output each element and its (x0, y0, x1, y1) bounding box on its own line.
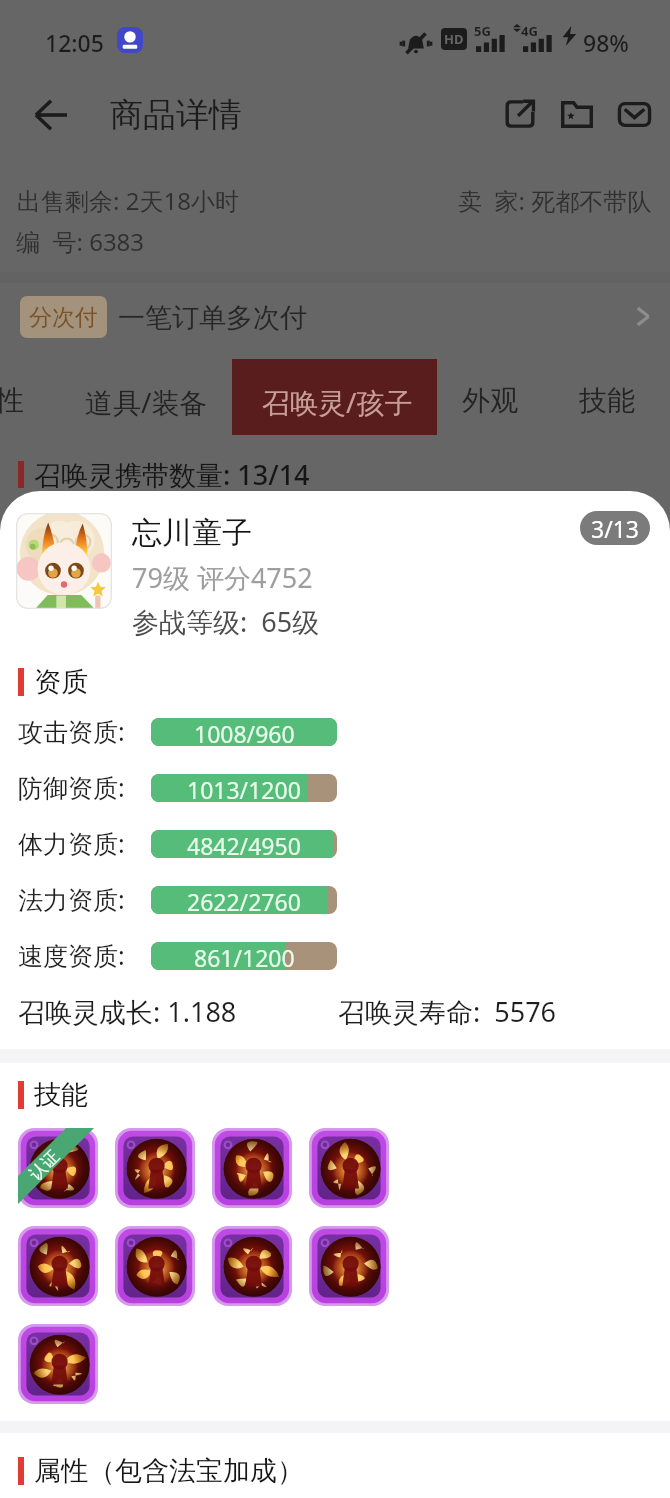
staticText: 12:05 (45, 27, 104, 58)
staticText: 79级 评分4752 (132, 559, 313, 596)
staticText: 4842/4950 (187, 830, 301, 858)
staticText: 属性（包含法宝加成） (34, 1454, 304, 1488)
staticText: 召唤灵/孩子 (262, 383, 413, 421)
staticText: 技能 (34, 1078, 88, 1112)
button[interactable]: Skill 4 (309, 1128, 389, 1208)
button[interactable]: 分次付 (0, 282, 670, 354)
staticText: 4G (521, 22, 538, 40)
button[interactable]: 道具/装备 (85, 383, 208, 421)
button[interactable]: Skill 5 (18, 1226, 98, 1306)
button[interactable]: Skill 8 (309, 1226, 389, 1306)
staticText: 认证 (25, 1146, 64, 1185)
button[interactable]: Favorites (551, 88, 603, 140)
staticText: 861/1200 (194, 942, 295, 970)
staticText: 98% (583, 27, 629, 58)
staticText: 防御资质: (18, 770, 125, 804)
staticText: 召唤灵成长: 1.188 (18, 993, 237, 1030)
button[interactable]: 性 (0, 383, 24, 418)
staticText: 5G (474, 22, 491, 40)
button[interactable]: Skill 1 (18, 1128, 98, 1208)
staticText: 1013/1200 (187, 774, 301, 802)
button[interactable]: Skill 7 (212, 1226, 292, 1306)
staticText: 忘川童子 (132, 514, 252, 552)
staticText: 商品详情 (110, 94, 242, 136)
staticText: 法力资质: (18, 882, 125, 916)
staticText: 编 号: 6383 (16, 225, 145, 258)
staticText: 2622/2760 (187, 886, 301, 914)
button[interactable]: 3/13 (580, 511, 650, 545)
staticText: 召唤灵携带数量: 13/14 (34, 456, 310, 493)
button[interactable]: Skill 9 (18, 1324, 98, 1404)
staticText: 出售剩余: 2天18小时 (17, 184, 239, 217)
button[interactable]: Messages (608, 88, 660, 140)
staticText: 1008/960 (194, 718, 295, 746)
staticText: 卖 家: 死都不带队 (458, 184, 652, 217)
staticText: 3/13 (591, 513, 640, 544)
staticText: 分次付 (29, 303, 98, 332)
button[interactable]: Skill 6 (115, 1226, 195, 1306)
staticText: HD (444, 30, 464, 48)
staticText: 攻击资质: (18, 714, 125, 748)
button[interactable] (232, 359, 437, 435)
button[interactable]: Back (22, 86, 80, 144)
button[interactable]: 外观 (462, 383, 518, 418)
staticText: 体力资质: (18, 826, 125, 860)
staticText: 召唤灵寿命: 5576 (338, 993, 557, 1030)
button[interactable]: Skill 2 (115, 1128, 195, 1208)
button[interactable]: 技能 (579, 383, 635, 418)
button[interactable]: Skill 3 (212, 1128, 292, 1208)
staticText: 速度资质: (18, 938, 125, 972)
button[interactable]: Share (494, 88, 546, 140)
staticText: 资质 (34, 665, 88, 699)
staticText: 参战等级: 65级 (132, 603, 320, 640)
staticText: 一笔订单多次付 (118, 301, 307, 335)
